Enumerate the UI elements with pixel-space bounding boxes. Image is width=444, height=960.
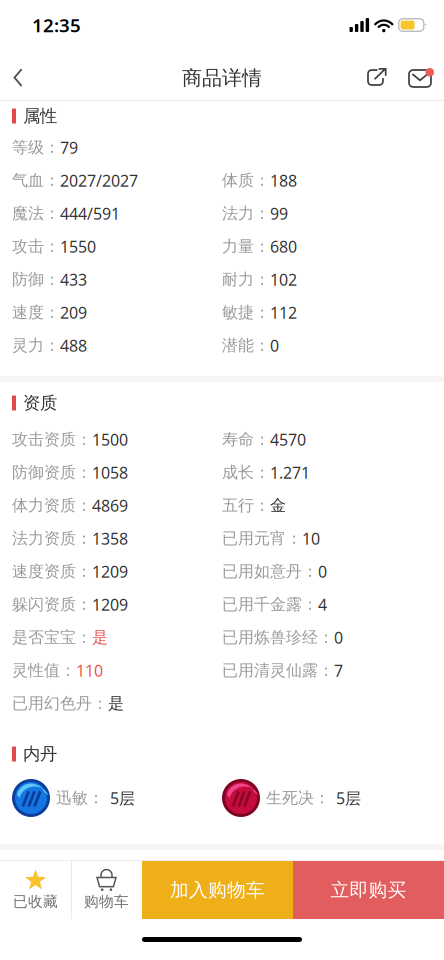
button[interactable]: 购物车 [71, 861, 142, 919]
staticText: 4570 [270, 429, 306, 450]
staticText: 4 [318, 594, 327, 615]
staticText: 是 [92, 628, 108, 647]
staticText: 已用千金露： [222, 595, 318, 614]
staticText: 已用炼兽珍经： [222, 628, 334, 647]
staticText: 7 [334, 660, 343, 681]
staticText: 已用元宵： [222, 529, 302, 548]
staticText: 躲闪资质： [12, 595, 92, 614]
staticText: 433 [60, 269, 87, 290]
staticText: 体力资质： [12, 496, 92, 515]
staticText: 已用如意丹： [222, 562, 318, 581]
staticText: 5层 [336, 787, 361, 809]
staticText: 潜能： [222, 336, 270, 355]
staticText: 属性 [23, 105, 57, 127]
staticText: 防御： [12, 270, 60, 289]
staticText: 气血： [12, 171, 60, 190]
staticText: 1.271 [270, 462, 310, 483]
staticText: 立即购买 [330, 878, 406, 901]
staticText: 188 [270, 170, 297, 191]
staticText: 寿命： [222, 430, 270, 449]
staticText: 速度资质： [12, 562, 92, 581]
button[interactable]: 返回 [0, 50, 36, 99]
staticText: 速度： [12, 303, 60, 322]
button[interactable]: 消息 [397, 50, 443, 99]
staticText: 1500 [92, 429, 128, 450]
staticText: 法力资质： [12, 529, 92, 548]
button[interactable]: 分享 [357, 50, 397, 99]
staticText: 资质 [23, 392, 57, 414]
staticText: 商品详情 [182, 66, 262, 90]
staticText: 112 [270, 302, 297, 323]
staticText: 1550 [60, 236, 96, 257]
staticText: 防御资质： [12, 463, 92, 482]
staticText: 488 [60, 335, 87, 356]
staticText: 成长： [222, 463, 270, 482]
staticText: 0 [334, 627, 343, 648]
staticText: 12:35 [32, 13, 81, 37]
staticText: 敏捷： [222, 303, 270, 322]
staticText: 灵性值： [12, 661, 76, 680]
staticText: 5层 [110, 787, 135, 809]
staticText: 是 [108, 694, 124, 713]
staticText: 法力： [222, 204, 270, 223]
staticText: 4869 [92, 495, 128, 516]
staticText: 2027/2027 [60, 170, 138, 191]
staticText: 1209 [92, 561, 128, 582]
staticText: 1209 [92, 594, 128, 615]
staticText: 已收藏 [13, 892, 58, 910]
staticText: 是否宝宝： [12, 628, 92, 647]
staticText: 迅敏： [56, 788, 104, 808]
staticText: 680 [270, 236, 297, 257]
staticText: 购物车 [84, 892, 129, 910]
staticText: 等级： [12, 138, 60, 157]
staticText: 力量： [222, 237, 270, 256]
staticText: 99 [270, 203, 288, 224]
staticText: 已用清灵仙露： [222, 661, 334, 680]
staticText: 内丹 [23, 743, 57, 765]
staticText: 1058 [92, 462, 128, 483]
staticText: 110 [76, 660, 103, 681]
staticText: 209 [60, 302, 87, 323]
button[interactable]: 已收藏 [0, 861, 71, 919]
staticText: 0 [318, 561, 327, 582]
staticText: 10 [302, 528, 320, 549]
button[interactable]: 立即购买 [293, 861, 444, 919]
staticText: 攻击： [12, 237, 60, 256]
staticText: 生死决： [266, 788, 330, 808]
staticText: 五行： [222, 496, 270, 515]
staticText: 444/591 [60, 203, 120, 224]
staticText: 79 [60, 137, 78, 158]
staticText: 体质： [222, 171, 270, 190]
staticText: 攻击资质： [12, 430, 92, 449]
button[interactable]: 加入购物车 [142, 861, 293, 919]
staticText: 0 [270, 335, 279, 356]
staticText: 已用幻色丹： [12, 694, 108, 713]
staticText: 1358 [92, 528, 128, 549]
staticText: 102 [270, 269, 297, 290]
staticText: 耐力： [222, 270, 270, 289]
staticText: 金 [270, 496, 286, 515]
staticText: 加入购物车 [170, 878, 265, 901]
staticText: 灵力： [12, 336, 60, 355]
staticText: 魔法： [12, 204, 60, 223]
